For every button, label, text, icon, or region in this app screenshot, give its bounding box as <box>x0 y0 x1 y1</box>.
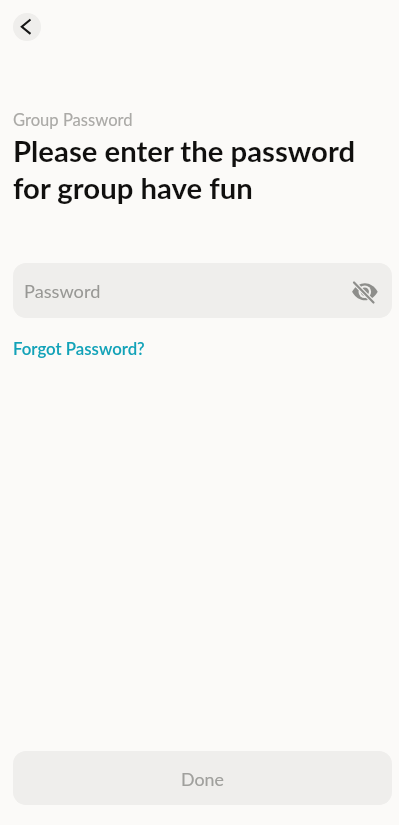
button[interactable]: Back <box>13 13 41 41</box>
button[interactable]: Forgot Password? <box>13 338 145 358</box>
staticText: Done <box>181 768 224 789</box>
staticText: Forgot Password? <box>13 338 145 358</box>
staticText: Group Password <box>13 110 133 130</box>
button[interactable]: Password <box>13 263 392 318</box>
staticText: Please enter the password for group have… <box>13 131 361 205</box>
button[interactable]: Done <box>13 751 392 805</box>
button[interactable]: Show password <box>352 278 378 304</box>
staticText: Password <box>24 280 101 302</box>
